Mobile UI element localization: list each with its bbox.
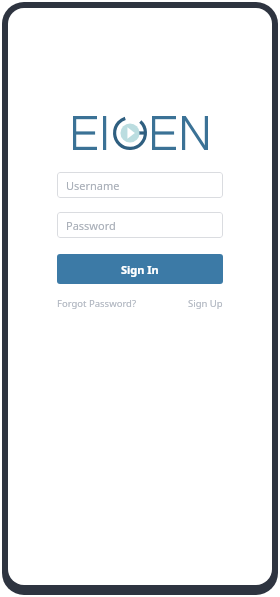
button[interactable]: Forgot Password? — [56, 295, 138, 312]
staticText: Forgot Password? — [57, 297, 137, 310]
staticText: Password — [66, 218, 116, 233]
button[interactable]: Sign Up — [187, 295, 224, 312]
button[interactable]: Password — [57, 212, 223, 238]
staticText: Username — [66, 178, 120, 193]
staticText: Sign Up — [188, 297, 223, 310]
staticText: Sign In — [121, 262, 159, 277]
button[interactable]: Sign In — [57, 254, 223, 284]
button[interactable]: Username — [57, 172, 223, 198]
